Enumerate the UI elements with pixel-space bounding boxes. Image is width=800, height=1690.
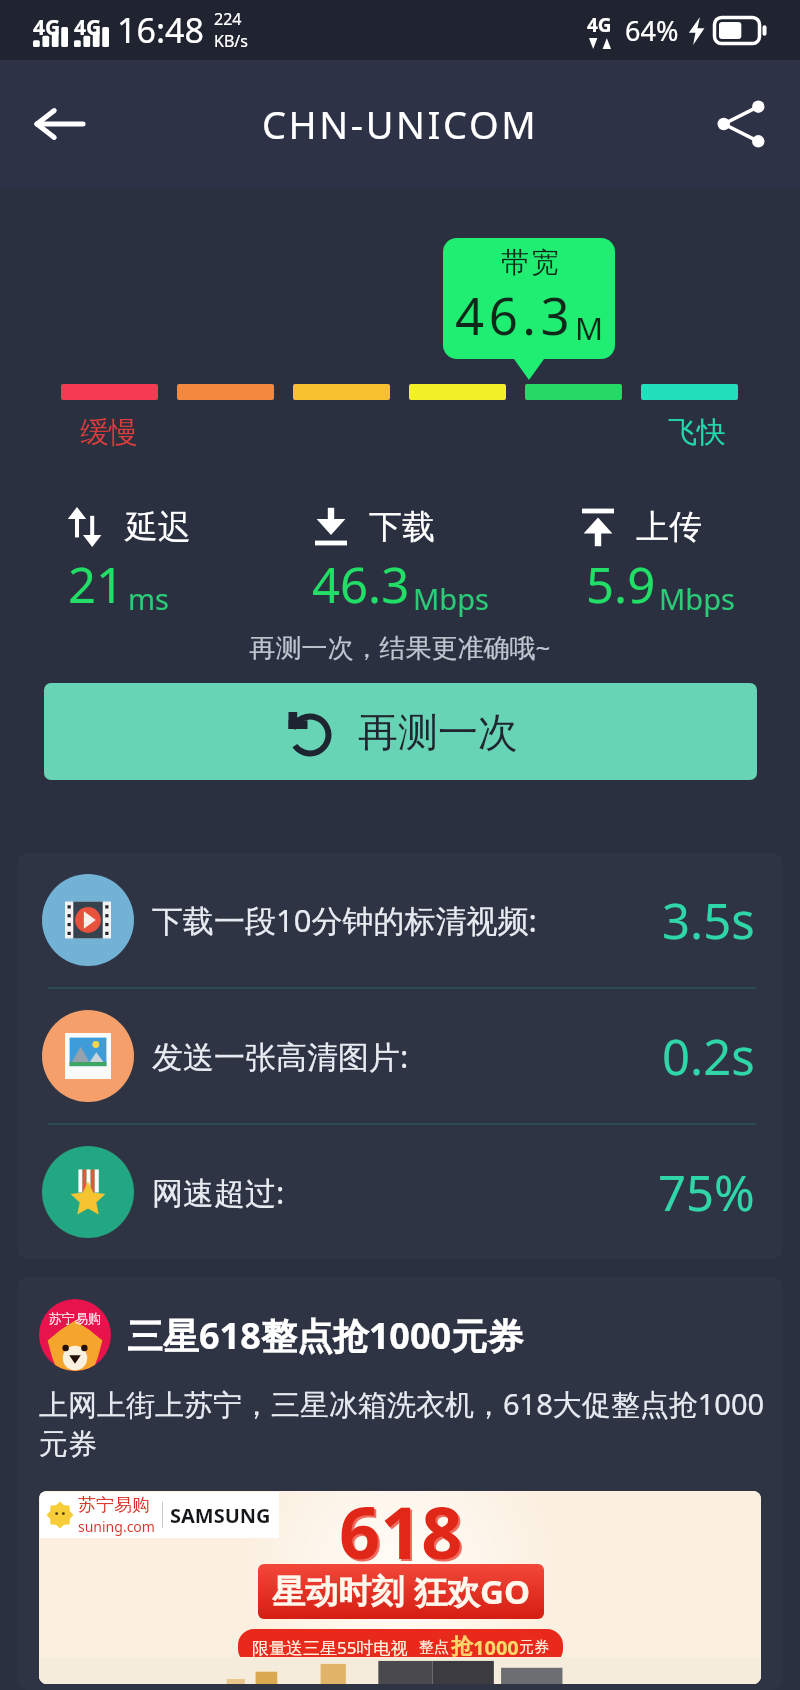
- button[interactable]: 苏宁易购: [18, 1277, 782, 1690]
- staticText: 46.3: [312, 551, 410, 618]
- staticText: 46.3: [455, 280, 575, 349]
- staticText: 元券: [519, 1638, 549, 1657]
- staticText: 上网上街上苏宁，三星冰箱洗衣机，618大促整点抢1000元券: [39, 1384, 765, 1463]
- staticText: 618: [341, 1491, 465, 1582]
- staticText: 0.2s: [662, 1023, 755, 1090]
- button[interactable]: Share: [714, 97, 768, 151]
- staticText: 苏宁易购: [78, 1494, 150, 1517]
- staticText: SAMSUNG: [170, 1502, 271, 1529]
- button[interactable]: 发送一张高清图片:: [42, 989, 755, 1123]
- staticText: 1000: [473, 1634, 519, 1661]
- staticText: 缓慢: [80, 414, 138, 451]
- staticText: 下载: [369, 506, 435, 548]
- staticText: 抢: [451, 1633, 473, 1661]
- staticText: 限量送三星55吋电视: [252, 1636, 408, 1659]
- staticText: 发送一张高清图片:: [152, 1035, 409, 1077]
- button[interactable]: 下载一段10分钟的标清视频:: [42, 853, 755, 987]
- staticText: 狂欢GO: [414, 1569, 530, 1614]
- staticText: 飞快: [668, 414, 726, 451]
- staticText: 整点: [419, 1638, 449, 1657]
- staticText: 5.9: [586, 551, 656, 618]
- staticText: suning.com: [78, 1517, 155, 1536]
- staticText: 75%: [658, 1159, 755, 1226]
- staticText: 三星618整点抢1000元券: [127, 1311, 524, 1360]
- staticText: Mbps: [413, 579, 489, 618]
- staticText: 4G: [587, 12, 612, 38]
- staticText: 3.5s: [662, 887, 755, 954]
- staticText: 下载一段10分钟的标清视频:: [152, 899, 537, 941]
- staticText: 上传: [636, 506, 702, 548]
- staticText: KB/s: [214, 30, 248, 52]
- staticText: M: [575, 307, 604, 349]
- staticText: 网速超过:: [152, 1171, 285, 1213]
- staticText: 16:48: [117, 7, 204, 53]
- staticText: 4G: [33, 13, 61, 42]
- staticText: 带宽: [500, 245, 560, 280]
- button[interactable]: 再测一次: [44, 683, 757, 780]
- staticText: Mbps: [659, 579, 735, 618]
- staticText: ms: [128, 579, 170, 618]
- staticText: 64%: [625, 12, 679, 49]
- staticText: 再测一次: [358, 707, 518, 757]
- staticText: 星动时刻: [272, 1571, 404, 1613]
- staticText: 4G: [74, 13, 102, 42]
- staticText: 618: [339, 1491, 463, 1580]
- staticText: 再测一次，结果更准确哦~: [0, 629, 800, 665]
- staticText: 延迟: [125, 506, 191, 548]
- staticText: CHN-UNICOM: [262, 98, 539, 150]
- button[interactable]: Back: [28, 92, 92, 156]
- staticText: 21: [68, 551, 125, 618]
- staticText: 224: [214, 8, 242, 30]
- staticText: 苏宁易购: [49, 1310, 101, 1326]
- button[interactable]: 网速超过:: [42, 1125, 755, 1259]
